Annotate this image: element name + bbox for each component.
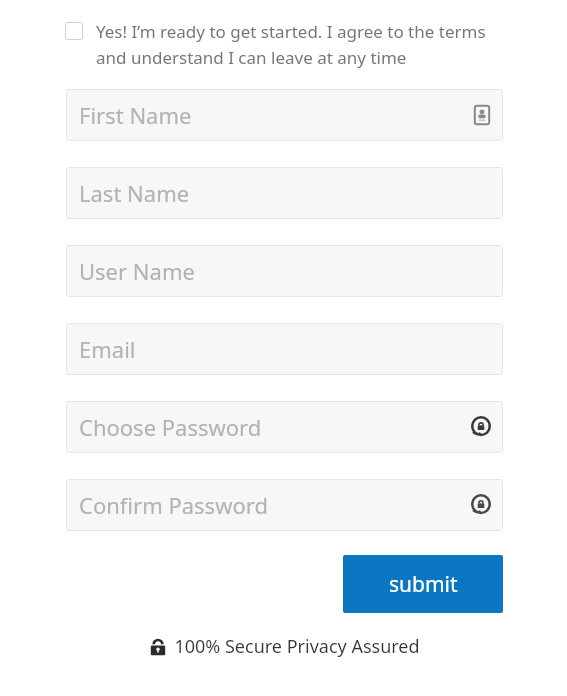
button[interactable]: Agree to terms checkbox (65, 20, 502, 69)
staticText: Choose Password (79, 412, 262, 442)
staticText: 100% Secure Privacy Assured (174, 634, 420, 659)
staticText: First Name (79, 100, 192, 130)
button[interactable]: Last Name (66, 167, 503, 219)
staticText: Confirm Password (79, 490, 268, 520)
staticText: submit (389, 570, 458, 599)
other: Agree to terms checkbox (65, 22, 83, 40)
button[interactable]: User Name (66, 245, 503, 297)
staticText: Email (79, 334, 136, 364)
staticText: User Name (79, 256, 195, 286)
button[interactable]: Confirm Password (66, 479, 503, 531)
button[interactable]: submit (343, 555, 503, 613)
button[interactable]: Email (66, 323, 503, 375)
button[interactable]: Choose Password (66, 401, 503, 453)
staticText: Yes! I’m ready to get started. I agree t… (96, 20, 502, 69)
staticText: Last Name (79, 178, 190, 208)
button[interactable]: First Name (66, 89, 503, 141)
